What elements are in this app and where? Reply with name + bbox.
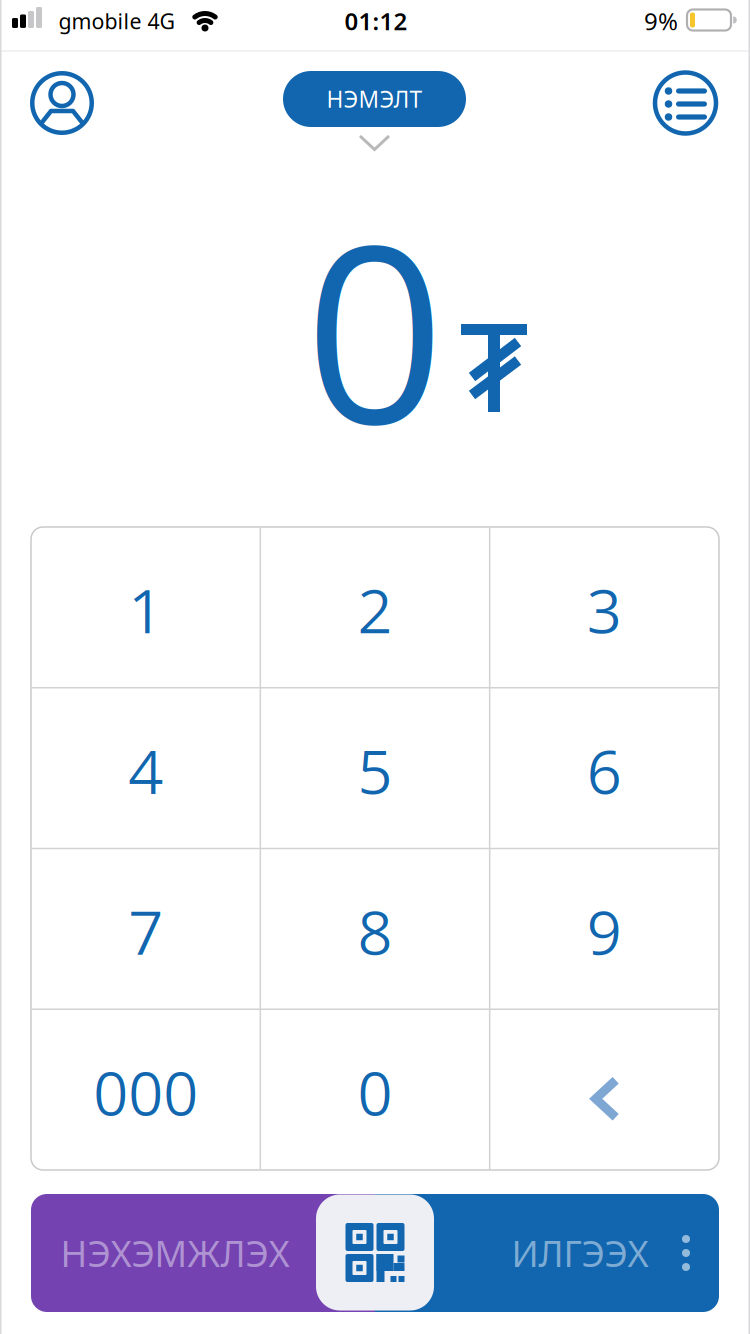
button[interactable]: ИЛГЭЭХ <box>375 1194 719 1312</box>
button[interactable]: 1 <box>33 531 258 688</box>
button[interactable]: 9 <box>492 852 717 1009</box>
staticText: 9% <box>644 5 678 37</box>
staticText: 6 <box>587 728 622 812</box>
button[interactable]: QR code <box>316 1194 434 1310</box>
button[interactable]: 0 <box>262 1013 488 1170</box>
button[interactable]: 000 <box>33 1013 258 1170</box>
staticText: 000 <box>93 1050 198 1133</box>
button[interactable]: 6 <box>492 692 717 849</box>
staticText: gmobile 4G <box>58 7 175 35</box>
staticText: 3 <box>587 568 622 651</box>
button[interactable]: 7 <box>33 852 258 1009</box>
button[interactable]: НЭХЭМЖЛЭХ <box>31 1194 375 1312</box>
button[interactable]: 3 <box>492 531 717 688</box>
button[interactable]: 4 <box>33 692 258 849</box>
staticText: НЭХЭМЖЛЭХ <box>60 1229 289 1277</box>
button[interactable]: 8 <box>262 852 488 1009</box>
button[interactable]: НЭМЭЛТ <box>283 71 466 127</box>
button[interactable]: More <box>674 1229 698 1277</box>
staticText: ИЛГЭЭХ <box>511 1229 648 1277</box>
staticText: 0 <box>304 161 444 495</box>
staticText: НЭМЭЛТ <box>326 84 422 114</box>
staticText: 2 <box>357 568 392 651</box>
button[interactable]: Profile <box>29 70 95 136</box>
staticText: 0 <box>357 1050 392 1133</box>
staticText: 8 <box>357 889 392 973</box>
staticText: 7 <box>128 889 163 973</box>
staticText: 01:12 <box>344 5 407 37</box>
button[interactable]: Transactions <box>652 70 718 136</box>
button[interactable]: Delete <box>492 1018 717 1175</box>
staticText: 9 <box>587 889 622 973</box>
staticText: 1 <box>128 568 163 651</box>
staticText: 5 <box>357 728 392 812</box>
button[interactable]: 5 <box>262 692 488 849</box>
staticText: 4 <box>128 728 163 812</box>
button[interactable]: 2 <box>262 531 488 688</box>
